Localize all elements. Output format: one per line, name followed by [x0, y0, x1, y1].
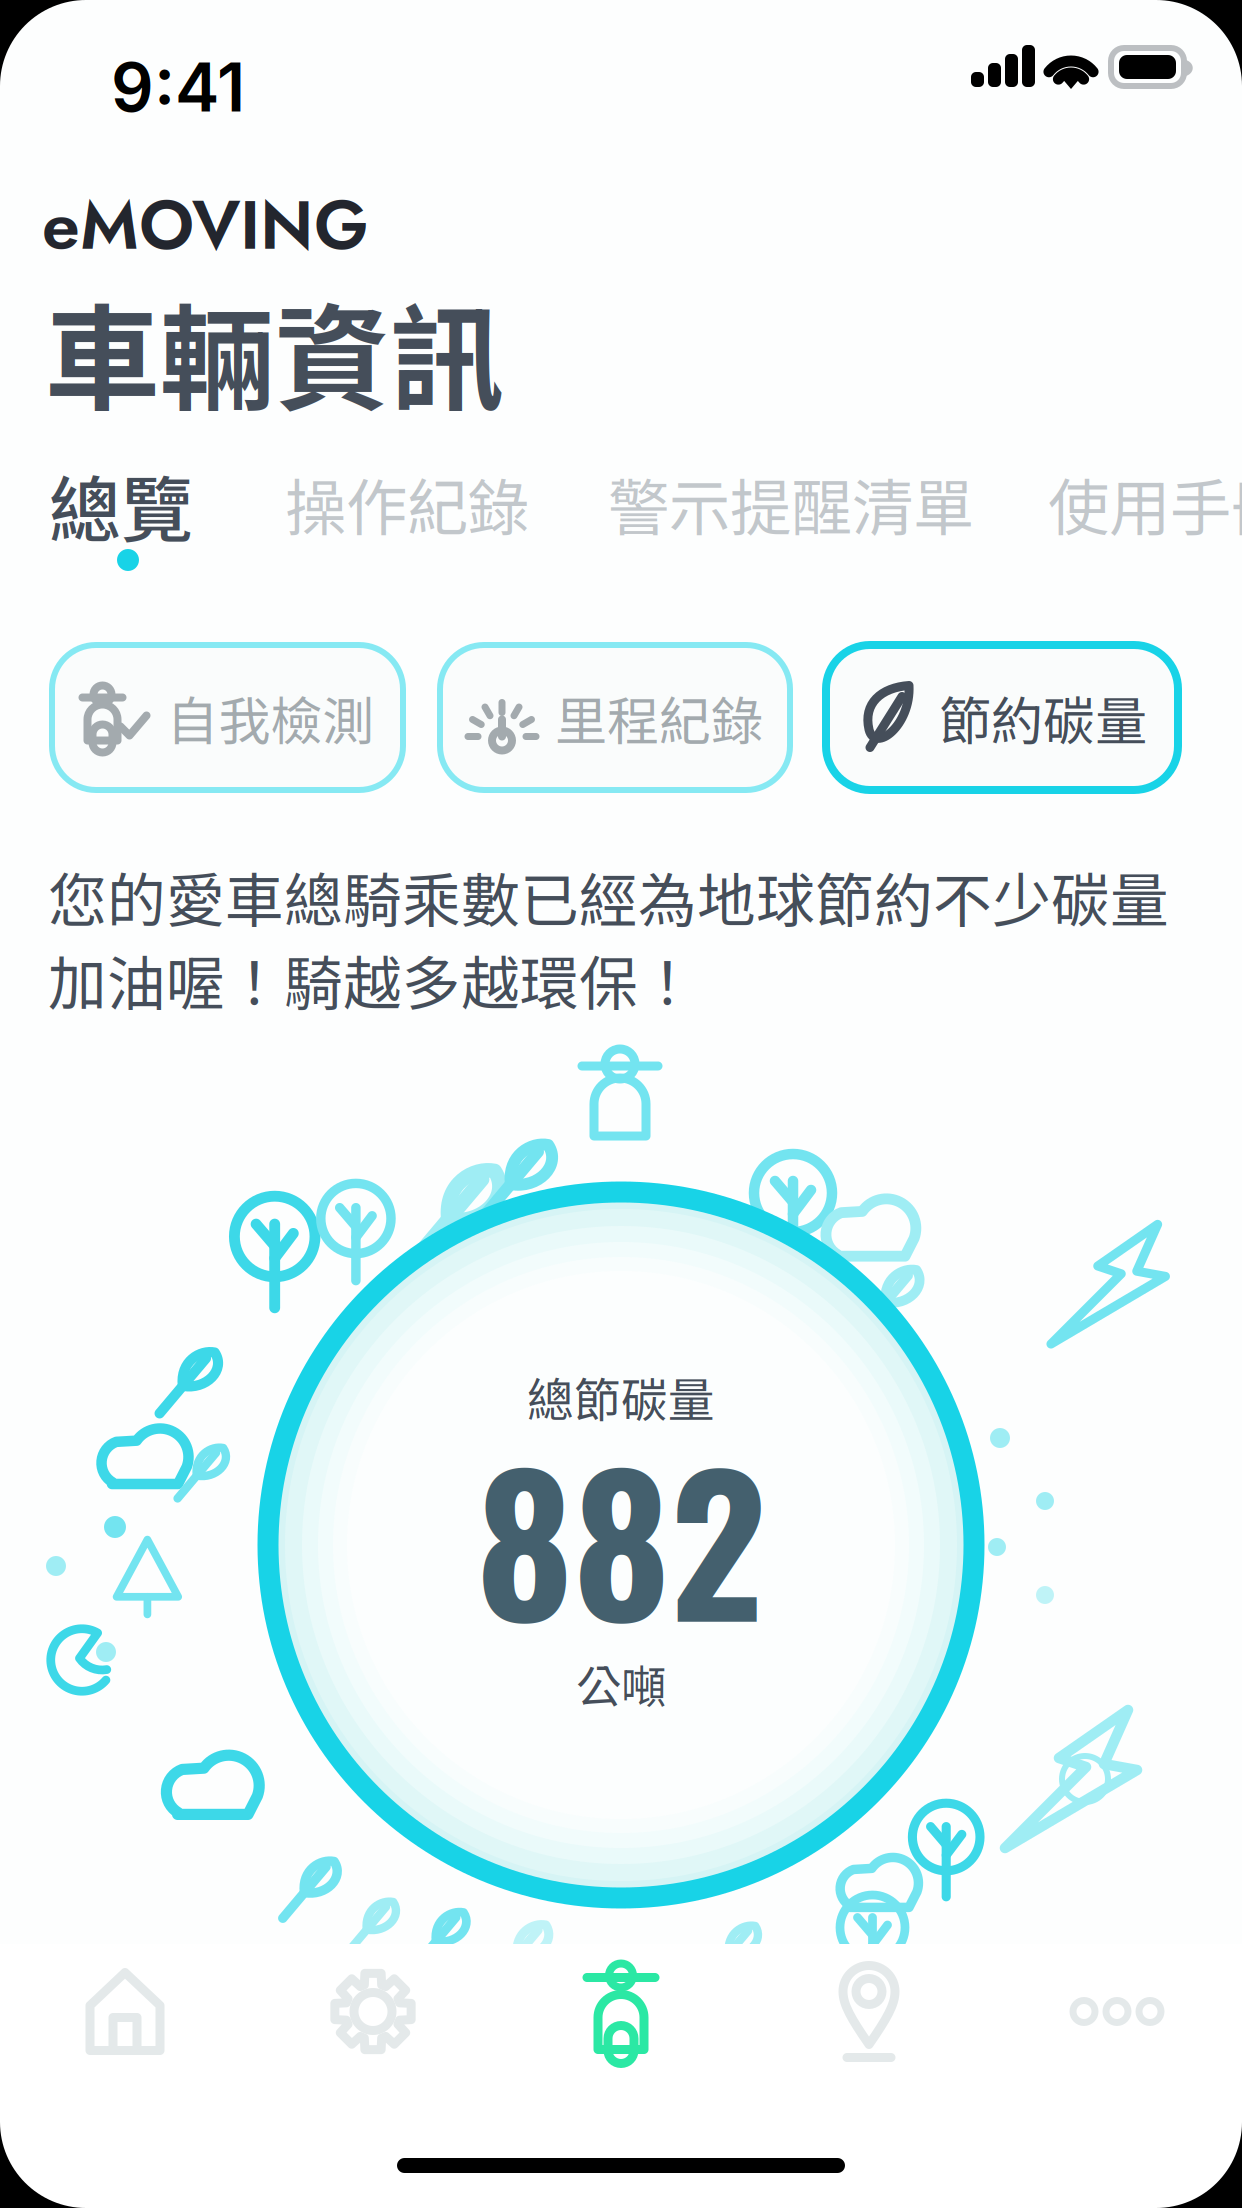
- button[interactable]: 自我檢測: [52, 645, 403, 790]
- button[interactable]: Home: [1, 1944, 249, 2079]
- staticText: 9:41: [111, 47, 245, 128]
- button[interactable]: More: [993, 1944, 1241, 2079]
- button[interactable]: Settings: [249, 1944, 497, 2079]
- staticText: 自我檢測: [166, 680, 374, 755]
- button[interactable]: Vehicle: [497, 1944, 745, 2079]
- button[interactable]: 里程紀錄: [440, 645, 790, 790]
- staticText: 加油喔！騎越多越環保！: [48, 937, 697, 1022]
- button[interactable]: Locations: [745, 1944, 993, 2079]
- staticText: 您的愛車總騎乘數已經為地球節約不少碳量: [48, 854, 1169, 939]
- staticText: 使用手冊: [1048, 459, 1242, 548]
- staticText: 總節碳量: [527, 1363, 715, 1431]
- staticText: 操作紀錄: [285, 459, 529, 548]
- staticText: eMOVING: [42, 176, 369, 274]
- staticText: 總覽: [49, 453, 193, 557]
- staticText: 警示提醒清單: [608, 459, 974, 548]
- button[interactable]: 節約碳量: [826, 645, 1178, 790]
- staticText: 882: [476, 1399, 766, 1676]
- staticText: 車輛資訊: [45, 268, 505, 434]
- staticText: 里程紀錄: [555, 680, 763, 755]
- staticText: 節約碳量: [939, 680, 1147, 755]
- staticText: 公噸: [576, 1651, 666, 1717]
